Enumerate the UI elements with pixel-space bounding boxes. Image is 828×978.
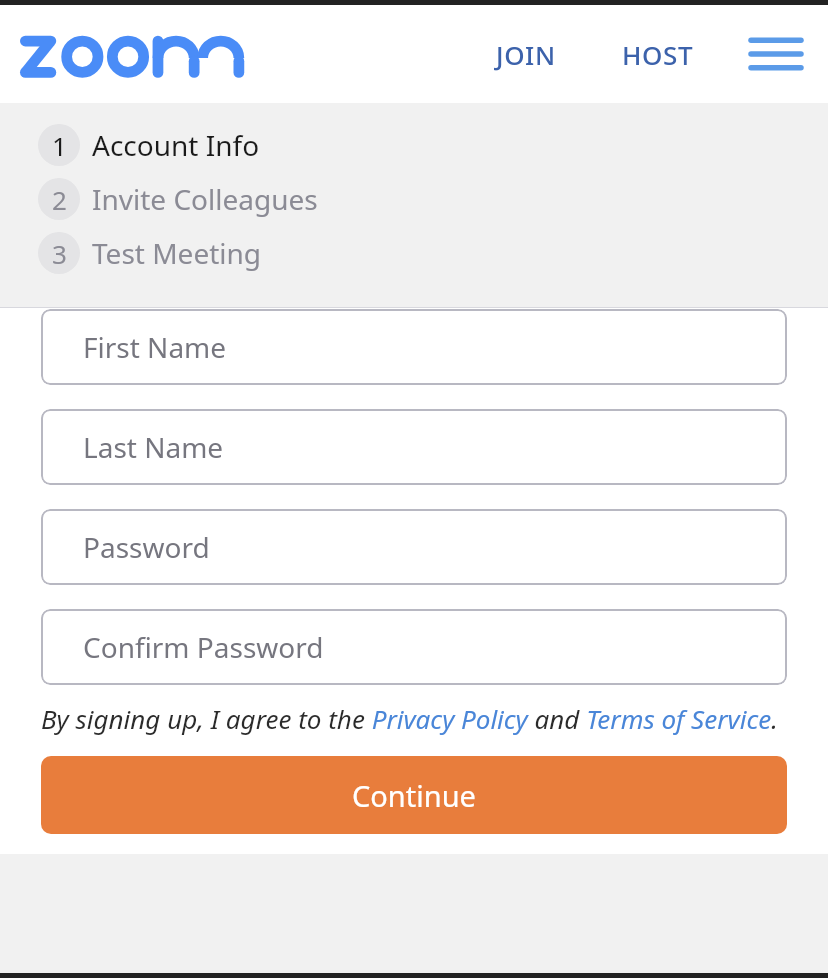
button[interactable]: First Name — [41, 309, 787, 385]
button[interactable]: HOST — [612, 25, 704, 84]
button[interactable]: Zoom home — [20, 27, 242, 81]
staticText: Invite Colleagues — [92, 180, 318, 218]
staticText: First Name — [83, 328, 227, 366]
staticText: Continue — [352, 776, 476, 815]
button[interactable]: By signing up, I agree to the Privacy Po… — [41, 701, 787, 736]
staticText: Last Name — [83, 428, 224, 466]
button[interactable]: Confirm Password — [41, 609, 787, 685]
staticText: 1 — [52, 128, 67, 163]
button[interactable]: Password — [41, 509, 787, 585]
button[interactable]: 3 — [38, 229, 828, 277]
staticText: HOST — [622, 37, 694, 72]
button[interactable]: 1 — [38, 121, 828, 169]
button[interactable]: Last Name — [41, 409, 787, 485]
staticText: 3 — [52, 236, 67, 271]
staticText: Account Info — [92, 126, 260, 164]
staticText: Confirm Password — [83, 628, 324, 666]
button[interactable]: Continue — [41, 756, 787, 834]
staticText: Password — [83, 528, 210, 566]
staticText: JOIN — [496, 37, 556, 72]
button[interactable]: 2 — [38, 175, 828, 223]
staticText: By signing up, I agree to the Privacy Po… — [41, 701, 778, 736]
staticText: Test Meeting — [92, 234, 262, 272]
button[interactable]: Menu — [748, 26, 804, 82]
staticText: 2 — [52, 182, 67, 217]
button[interactable]: JOIN — [486, 25, 566, 84]
